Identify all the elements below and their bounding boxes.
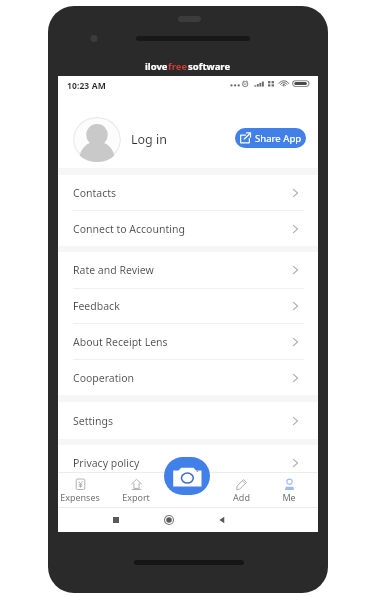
button[interactable]: Me — [265, 475, 313, 505]
button[interactable]: Export — [112, 475, 160, 505]
staticText: About Receipt Lens — [73, 335, 168, 349]
staticText: Feedback — [73, 299, 120, 313]
staticText: Add — [233, 491, 250, 503]
button[interactable]: Back — [212, 510, 232, 530]
button[interactable]: Scan receipt — [164, 457, 210, 495]
staticText: Log in — [131, 131, 168, 148]
staticText: Export — [122, 491, 150, 503]
staticText: Share App — [255, 132, 302, 145]
staticText: Settings — [73, 414, 113, 428]
staticText: ilove — [145, 60, 168, 73]
button[interactable] — [73, 117, 121, 162]
staticText: software — [188, 60, 231, 73]
button[interactable]: About Receipt Lens — [58, 324, 318, 360]
button[interactable]: Cooperation — [58, 360, 318, 396]
button[interactable]: Settings — [58, 403, 318, 439]
button[interactable]: Contacts — [58, 175, 318, 211]
button[interactable]: Connect to Accounting — [58, 211, 318, 247]
staticText: Rate and Review — [73, 263, 154, 277]
staticText: Privacy policy — [73, 456, 140, 470]
button[interactable]: Home — [159, 510, 179, 530]
button[interactable]: Rate and Review — [58, 252, 318, 288]
staticText: Expenses — [60, 491, 100, 503]
staticText: Cooperation — [73, 371, 135, 385]
button[interactable]: Expenses — [56, 475, 104, 505]
staticText: Me — [282, 491, 296, 503]
staticText: Connect to Accounting — [73, 222, 185, 236]
button[interactable]: Privacy policy — [58, 445, 318, 481]
button[interactable]: Recent apps — [106, 510, 126, 530]
staticText: free — [168, 60, 188, 73]
staticText: 10:23 AM — [67, 80, 106, 92]
button[interactable]: Share App — [235, 128, 306, 148]
button[interactable]: Add — [217, 475, 265, 505]
staticText: Contacts — [73, 186, 117, 200]
button[interactable]: Feedback — [58, 288, 318, 324]
